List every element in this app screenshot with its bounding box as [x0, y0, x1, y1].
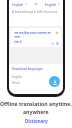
staticText: anywhere: [23, 108, 49, 115]
button[interactable]: Hindi: [12, 80, 60, 86]
staticText: English: [12, 75, 23, 79]
staticText: Hindi: [12, 81, 20, 85]
staticText: A bold attempt is half of success: [12, 10, 58, 14]
button[interactable]: Share: [51, 42, 54, 45]
staticText: एक साहसिक प्रयास सफलता का आधा: [14, 31, 54, 39]
button[interactable]: Copy: [56, 42, 59, 45]
staticText: English: [12, 2, 24, 6]
button[interactable]: Favorite: [55, 31, 59, 35]
button[interactable]: English: [12, 2, 27, 6]
button[interactable]: A bold attempt is half of success: [9, 7, 63, 26]
button[interactable]: Download: [49, 76, 60, 87]
staticText: Dictionary: [25, 118, 48, 124]
staticText: English: [45, 2, 57, 6]
staticText: Download languages: [12, 67, 44, 71]
button[interactable]: English: [45, 2, 60, 6]
staticText: Offline translation anytime,: [0, 100, 72, 107]
staticText: होता है: [14, 40, 22, 44]
button[interactable]: English: [12, 74, 60, 80]
button[interactable]: एक साहसिक प्रयास सफलता का आधा: [11, 28, 61, 47]
button[interactable]: Swap languages: [34, 2, 38, 6]
